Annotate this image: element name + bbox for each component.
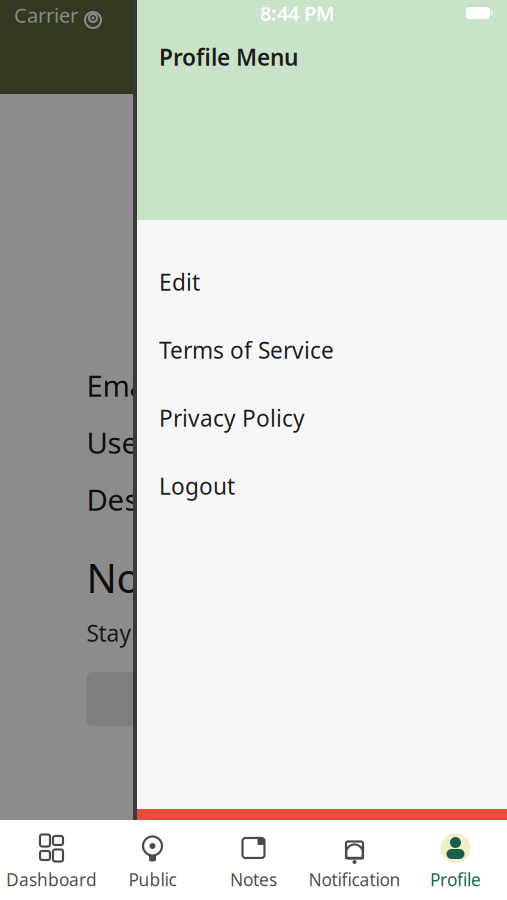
staticText: Privacy Policy [159,403,305,433]
staticText: 8:44 PM [260,0,335,26]
button[interactable]: Privacy Policy [137,384,507,452]
staticText: Logout [159,471,235,501]
button[interactable]: Notification [304,822,405,900]
staticText: Profile Menu [159,42,298,72]
button[interactable]: Notes [203,822,304,900]
button[interactable]: Terms of Service [137,316,507,384]
staticText: Username: keith [86,423,314,462]
staticText: Email: keith@example.com [86,366,458,405]
button[interactable]: Disable [86,672,326,726]
staticText: Carrier [14,2,78,28]
button[interactable]: Edit [137,248,507,316]
staticText: Notes [230,868,277,891]
button[interactable]: Logout [137,452,507,520]
staticText: Profile [430,868,481,891]
button[interactable]: Profile [405,822,506,900]
button[interactable]: Public [102,822,203,900]
staticText: Terms of Service [159,335,334,365]
staticText: Notifications [86,551,321,604]
button[interactable]: Dashboard [1,822,102,900]
staticText: Stay on app notifications [86,618,351,648]
staticText: Edit [159,267,200,297]
staticText: Dashboard [6,868,97,891]
staticText: Description: hello [86,480,330,519]
staticText: Public [128,868,176,891]
staticText: Notification [308,868,400,891]
